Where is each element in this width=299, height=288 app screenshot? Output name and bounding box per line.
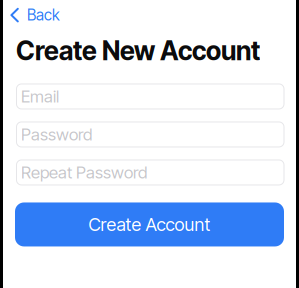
staticText: Password <box>21 124 92 145</box>
staticText: Back <box>27 6 60 24</box>
staticText: Create Account <box>88 214 210 235</box>
button[interactable]: Back <box>3 3 68 27</box>
staticText: Create New Account <box>16 35 260 66</box>
staticText: Repeat Password <box>21 162 147 183</box>
staticText: Email <box>21 86 59 107</box>
button[interactable]: Create Account <box>15 202 284 246</box>
